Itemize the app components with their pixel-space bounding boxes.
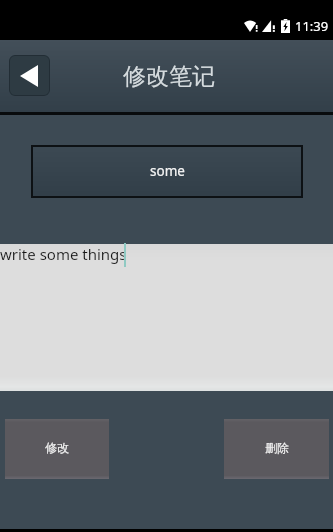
staticText: some: [150, 162, 185, 180]
staticText: 修改: [45, 440, 69, 455]
button[interactable]: some: [31, 145, 303, 198]
staticText: write some things: [0, 244, 127, 264]
button[interactable]: 删除: [224, 419, 329, 479]
staticText: 删除: [265, 440, 289, 455]
button[interactable]: 修改: [5, 419, 109, 479]
staticText: 修改笔记: [123, 62, 215, 91]
staticText: 11:39: [295, 17, 329, 35]
button[interactable]: Back: [9, 55, 50, 96]
button[interactable]: write some things: [0, 244, 333, 391]
